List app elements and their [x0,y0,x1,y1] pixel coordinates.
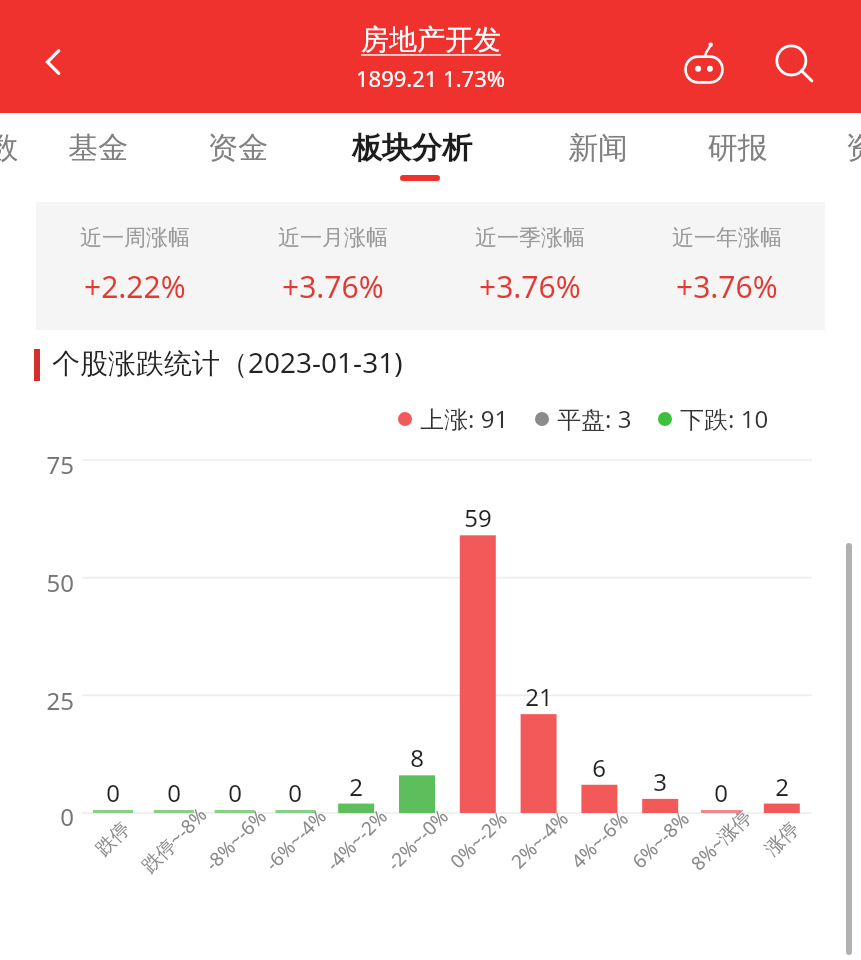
button[interactable]: Assistant [668,28,740,100]
button[interactable]: 下跌: 10 [658,402,769,435]
staticText: +3.76% [676,266,778,307]
staticText: 0 [265,776,325,809]
staticText: 8 [387,741,447,774]
button[interactable]: 数 [0,113,18,190]
staticText: 数 [0,129,18,167]
staticText: 3 [630,765,690,798]
button[interactable]: Search [758,28,830,100]
staticText: 2 [326,770,386,803]
staticText: 1899.21 1.73% [356,63,506,93]
staticText: 0 [144,776,204,809]
staticText: 0%~-2% [444,806,513,874]
staticText: 近一月涨幅 [278,224,388,252]
button[interactable]: 近一季涨幅 [431,202,628,330]
button[interactable]: 新闻 [568,113,628,190]
button[interactable]: 板块分析 [352,113,472,190]
staticText: 0 [691,776,751,809]
staticText: 下跌: 10 [680,402,769,435]
button[interactable]: 资 [846,113,861,190]
staticText: 0 [205,776,265,809]
button[interactable]: Back [22,30,86,94]
staticText: -2%~-0% [381,804,454,876]
staticText: 资 [846,129,861,167]
staticText: 个股涨跌统计（2023-01-31) [52,343,403,381]
button[interactable]: 近一周涨幅 [36,202,234,330]
staticText: 近一周涨幅 [80,224,190,252]
staticText: 75 [18,448,74,481]
staticText: 跌停~-8% [136,802,212,878]
button[interactable]: 近一年涨幅 [628,202,825,330]
staticText: 平盘: 3 [557,402,632,435]
staticText: 50 [18,566,74,599]
staticText: 资金 [208,129,268,167]
staticText: 25 [18,684,74,717]
button[interactable]: 资金 [208,113,268,190]
staticText: 59 [448,501,508,534]
staticText: 房地产开发 [361,22,501,57]
staticText: 新闻 [568,129,628,167]
staticText: 近一季涨幅 [475,224,585,252]
staticText: 0 [18,800,74,833]
staticText: 上涨: 91 [420,402,509,435]
staticText: -6%~-4% [259,804,332,876]
staticText: 涨停 [760,817,804,861]
staticText: 基金 [68,129,128,167]
staticText: 板块分析 [352,129,472,167]
button[interactable]: 上涨: 91 [398,402,509,435]
staticText: 研报 [708,129,768,167]
staticText: 2%~-4% [505,806,574,874]
staticText: 0 [83,776,143,809]
staticText: 8%~涨停 [685,804,757,876]
button[interactable]: 近一月涨幅 [234,202,431,330]
staticText: 6 [569,751,629,784]
button[interactable]: 基金 [68,113,128,190]
staticText: 6%~-8% [626,806,695,874]
staticText: 4%~-6% [565,806,634,874]
staticText: 近一年涨幅 [672,224,782,252]
staticText: -8%~-6% [199,804,272,876]
staticText: +3.76% [282,266,384,307]
staticText: 2 [752,770,812,803]
staticText: -4%~-2% [320,804,393,876]
staticText: +2.22% [84,266,186,307]
button[interactable]: 研报 [708,113,768,190]
button[interactable]: 平盘: 3 [535,402,632,435]
staticText: 21 [509,680,569,713]
staticText: 跌停 [91,817,135,861]
staticText: +3.76% [479,266,581,307]
